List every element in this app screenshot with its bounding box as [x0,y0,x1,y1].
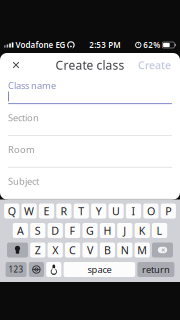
button[interactable]: F [65,223,80,238]
staticText: A [17,223,24,238]
button[interactable]: Close [5,54,27,76]
button[interactable]: Subject [8,177,172,199]
staticText: Room [8,143,35,156]
staticText: 123 [9,264,24,275]
button[interactable]: Q [4,203,19,218]
button[interactable]: C [65,242,80,257]
staticText: H [103,223,111,238]
staticText: D [51,223,59,238]
button[interactable]: K [135,223,150,238]
staticText: L [157,223,163,238]
staticText: I [131,204,135,218]
button[interactable]: V [82,242,98,257]
staticText: space [87,263,111,276]
button[interactable]: D [48,223,63,238]
button[interactable]: L [152,223,167,238]
staticText: Subject [8,175,39,187]
staticText: M [137,243,147,257]
staticText: E [43,204,49,218]
staticText: O [147,204,155,218]
button[interactable]: S [30,223,45,238]
button[interactable]: M [135,242,150,257]
button[interactable]: A [13,223,28,238]
staticText: J [123,223,126,238]
staticText: X [52,243,58,257]
staticText: Class name [8,79,56,92]
button[interactable]: Dictation [46,262,61,277]
staticText: 62% [143,40,160,50]
button[interactable]: U [108,203,124,218]
staticText: Vodafone EG [15,40,65,50]
button[interactable]: R [56,203,71,218]
button[interactable]: W [21,203,37,218]
button[interactable]: space [64,262,135,277]
button[interactable]: Delete [152,242,173,257]
staticText: C [69,243,76,257]
button[interactable]: Room [8,145,172,168]
button[interactable]: Create [134,53,175,77]
staticText: return [142,263,170,276]
button[interactable]: Y [91,203,106,218]
staticText: S [35,223,41,238]
staticText: Y [96,204,102,218]
button[interactable]: 123 [6,262,27,277]
button[interactable]: Section [8,113,172,136]
staticText: T [78,204,84,218]
button[interactable]: O [143,203,158,218]
button[interactable]: Next keyboard [29,262,44,277]
staticText: U [112,204,120,218]
staticText: R [60,204,67,218]
button[interactable]: X [48,242,63,257]
staticText: Create [138,58,171,72]
staticText: K [139,223,146,238]
staticText: W [24,204,34,218]
button[interactable]: H [100,223,115,238]
staticText: F [70,223,76,238]
staticText: N [121,243,129,257]
staticText: Q [8,204,16,218]
button[interactable]: I [126,203,141,218]
button[interactable]: return [137,262,174,277]
button[interactable]: Z [30,242,45,257]
button[interactable]: P [161,203,176,218]
button[interactable]: N [117,242,132,257]
button[interactable]: Shift [7,242,28,257]
button[interactable]: T [74,203,89,218]
staticText: Create class [55,57,124,73]
staticText: V [87,243,93,257]
staticText: G [86,223,94,238]
staticText: Section [8,111,39,124]
button[interactable]: G [82,223,98,238]
staticText: P [165,204,171,218]
staticText: 2:53 PM [89,40,120,50]
button[interactable]: J [117,223,132,238]
staticText: B [104,243,111,257]
button[interactable]: E [39,203,54,218]
staticText: Z [35,243,41,257]
button[interactable]: Class name [8,81,172,104]
button[interactable]: B [100,242,115,257]
